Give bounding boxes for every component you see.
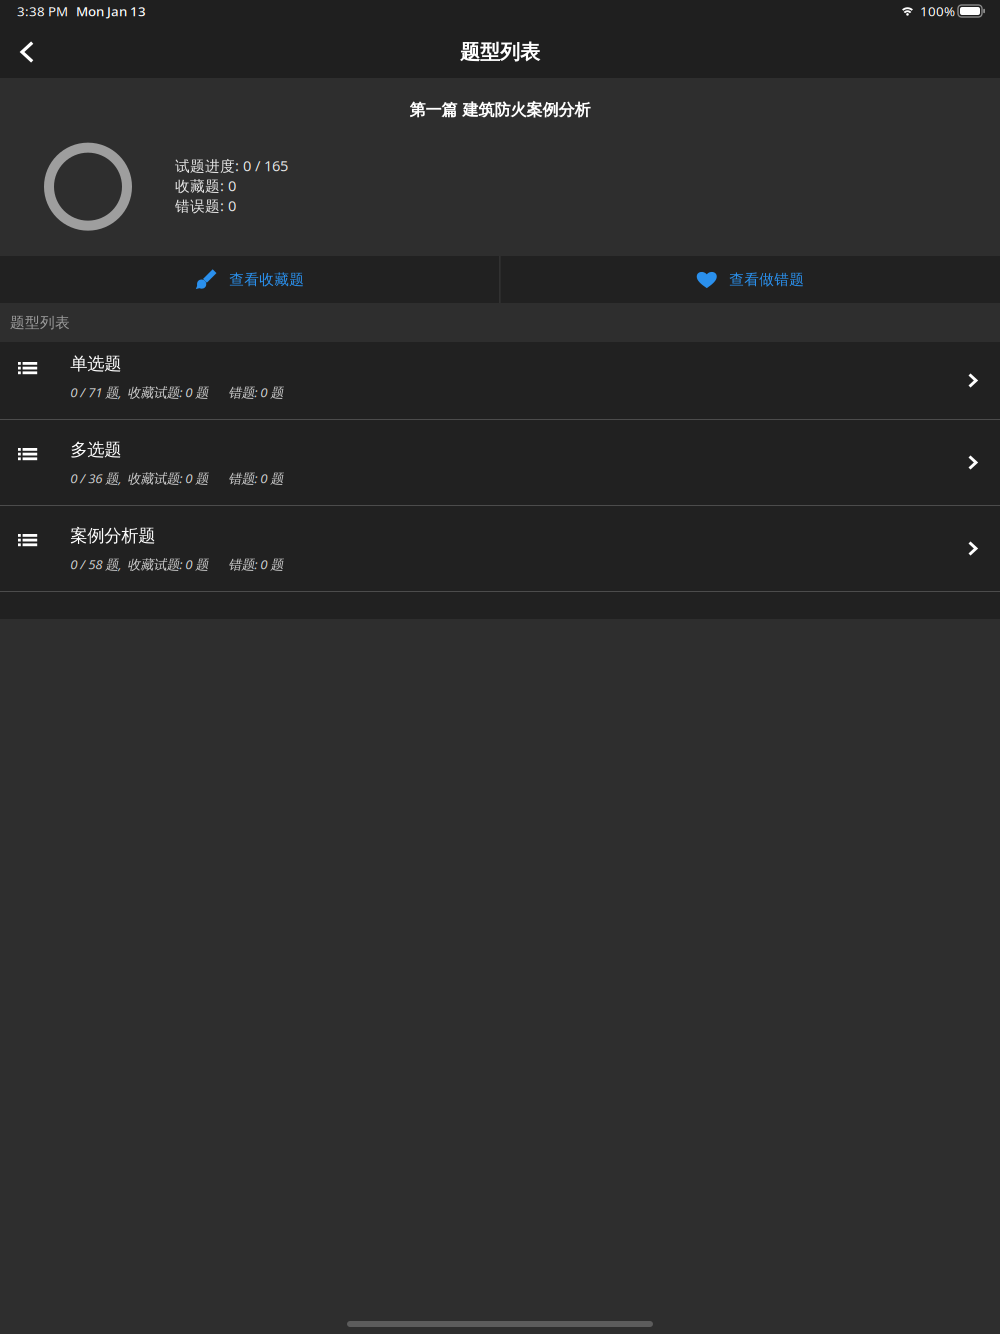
staticText: 0 / 58 题, 收藏试题: 0 题 错题: 0 题: [70, 555, 283, 573]
button[interactable]: 查看做错题: [500, 256, 1000, 303]
button[interactable]: 单选题: [0, 342, 1000, 419]
staticText: 查看收藏题: [229, 270, 304, 288]
button[interactable]: 多选题: [0, 420, 1000, 505]
staticText: 多选题: [70, 439, 121, 460]
staticText: 题型列表: [460, 40, 540, 64]
staticText: Mon Jan 13: [76, 2, 146, 20]
button[interactable]: 查看收藏题: [0, 256, 499, 303]
staticText: 收藏题: 0: [175, 176, 236, 195]
staticText: 查看做错题: [729, 270, 804, 288]
staticText: 100%: [920, 2, 955, 20]
staticText: 0 / 36 题, 收藏试题: 0 题 错题: 0 题: [70, 469, 283, 487]
staticText: 0 / 71 题, 收藏试题: 0 题 错题: 0 题: [70, 383, 283, 401]
staticText: 案例分析题: [70, 525, 155, 546]
button[interactable]: Back: [0, 26, 52, 78]
staticText: 第一篇 建筑防火案例分析: [409, 100, 590, 120]
staticText: 单选题: [70, 353, 121, 374]
staticText: 题型列表: [10, 313, 70, 331]
staticText: 错误题: 0: [175, 196, 236, 215]
staticText: 3:38 PM: [17, 2, 68, 20]
button[interactable]: 案例分析题: [0, 506, 1000, 591]
staticText: 试题进度: 0 / 165: [175, 156, 288, 175]
